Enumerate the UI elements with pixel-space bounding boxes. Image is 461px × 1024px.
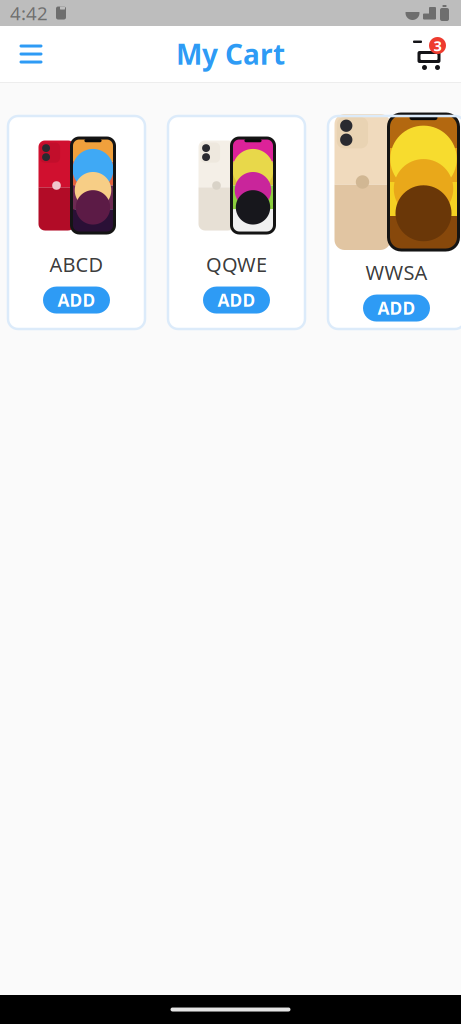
button[interactable]: WWSA: [328, 116, 461, 329]
button[interactable]: ADD: [363, 295, 430, 322]
staticText: My Cart: [176, 35, 285, 73]
staticText: WWSA: [365, 259, 427, 286]
staticText: ADD: [217, 289, 255, 312]
staticText: 3: [433, 36, 441, 55]
staticText: ADD: [377, 297, 415, 320]
staticText: QQWE: [206, 251, 267, 278]
button[interactable]: ABCD: [8, 116, 145, 329]
staticText: 4:42: [10, 1, 48, 25]
button[interactable]: Menu: [9, 28, 53, 80]
button[interactable]: QQWE: [168, 116, 305, 329]
button[interactable]: ADD: [43, 287, 110, 314]
staticText: ADD: [57, 289, 95, 312]
button[interactable]: ADD: [203, 287, 270, 314]
staticText: ABCD: [49, 251, 103, 278]
button[interactable]: Cart, 3 items: [406, 28, 452, 80]
